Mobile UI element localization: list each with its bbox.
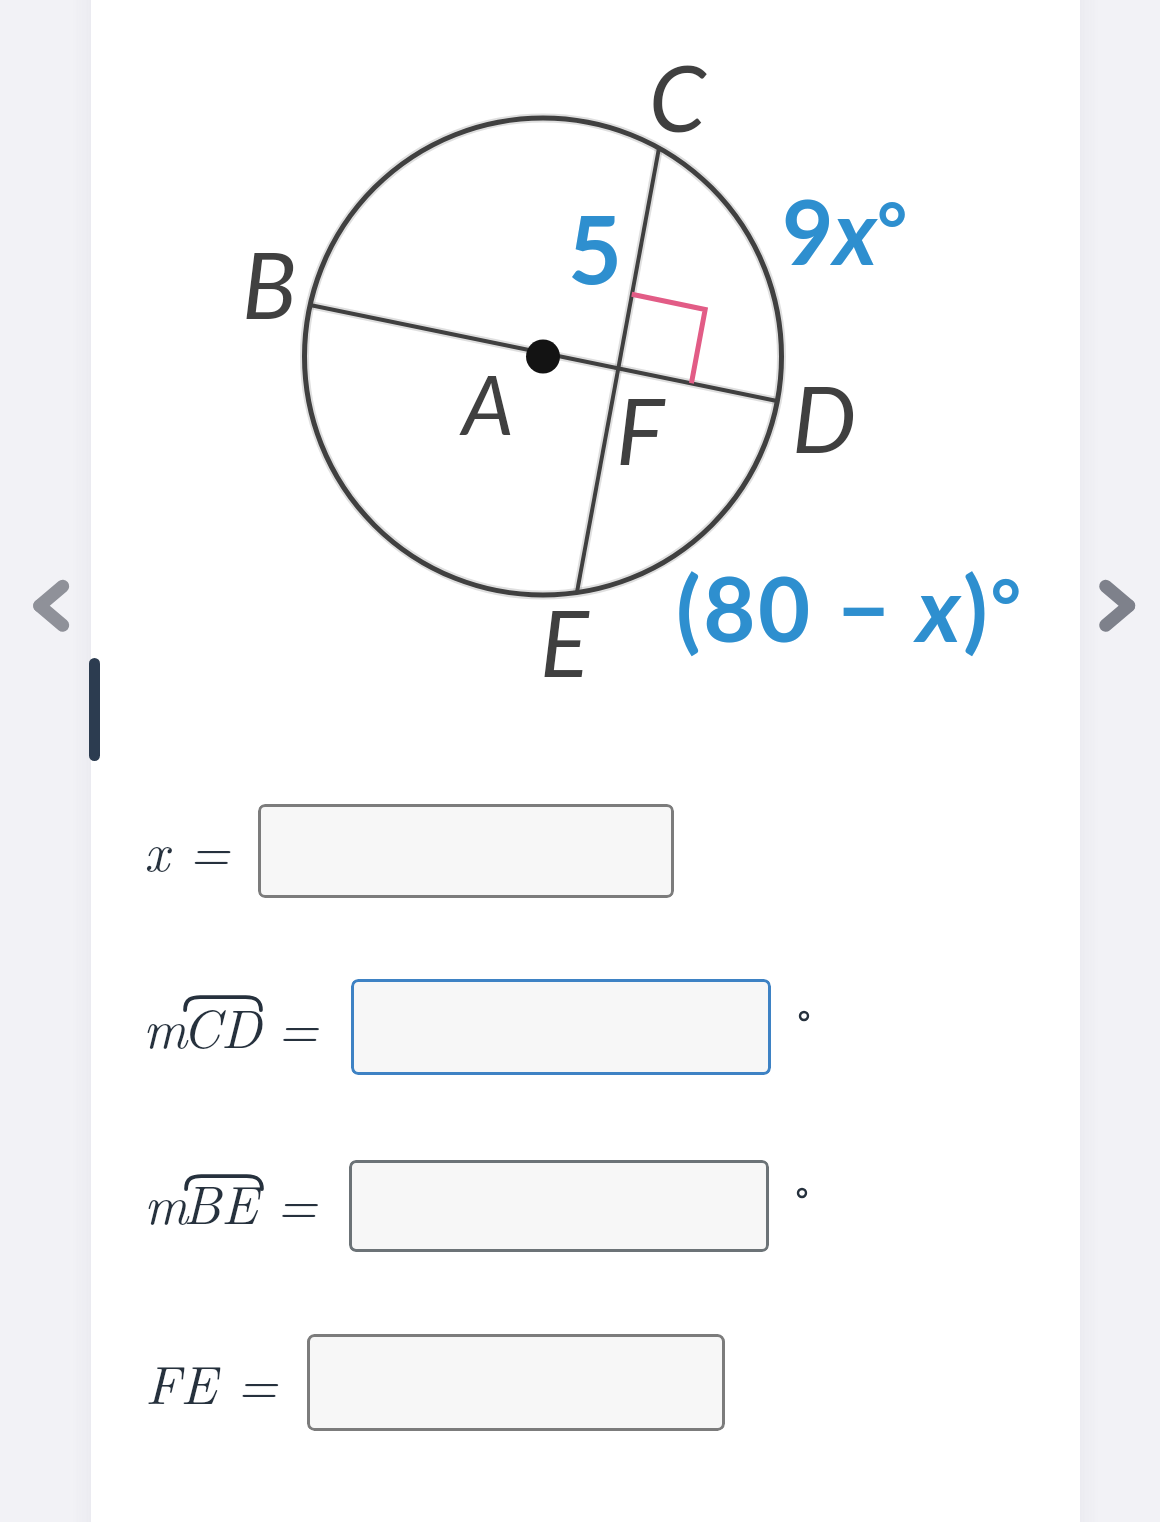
staticText: m xyxy=(143,987,188,1063)
staticText: 5 xyxy=(568,192,622,304)
staticText: (80 − x)° xyxy=(676,553,1024,661)
button[interactable]: Next problem xyxy=(1083,560,1151,652)
button[interactable]: Answer field for FE xyxy=(307,1334,725,1431)
staticText: m xyxy=(144,1163,189,1239)
staticText: C xyxy=(649,42,706,151)
button[interactable]: Answer field for measure of arc BE xyxy=(349,1160,769,1252)
staticText: x = xyxy=(144,810,230,886)
staticText: = xyxy=(276,1163,318,1239)
staticText: CD xyxy=(182,987,262,1063)
staticText: B xyxy=(242,229,297,338)
staticText: = xyxy=(277,987,319,1063)
button[interactable]: Previous problem xyxy=(17,560,85,652)
button[interactable]: Answer field for measure of arc CD xyxy=(351,979,771,1075)
staticText: F xyxy=(616,375,665,484)
staticText: E xyxy=(540,587,589,696)
staticText: D xyxy=(792,363,857,472)
button[interactable]: Answer field for x xyxy=(258,804,674,898)
staticText: 9x° xyxy=(782,177,908,284)
staticText: FE = xyxy=(145,1343,278,1419)
staticText: BE xyxy=(183,1163,258,1239)
staticText: A xyxy=(462,354,514,452)
